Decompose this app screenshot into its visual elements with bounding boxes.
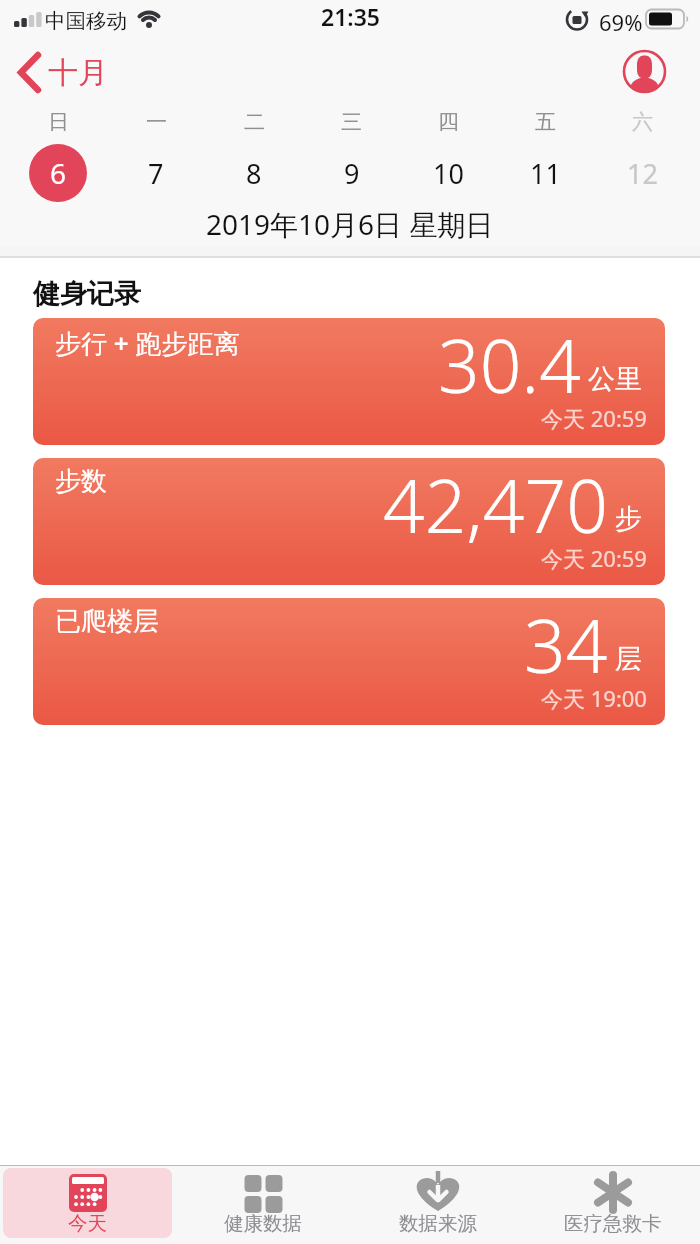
staticText: 30.4 [438, 318, 581, 414]
staticText: 6 [50, 154, 67, 192]
staticText: 步数 [55, 465, 107, 498]
staticText: 健身记录 [33, 277, 141, 311]
button[interactable]: 8 [205, 144, 303, 202]
staticText: 六 [632, 109, 653, 135]
staticText: 34 [524, 598, 608, 694]
button[interactable]: 12 [594, 144, 691, 202]
staticText: 7 [148, 155, 164, 192]
staticText: 8 [246, 155, 262, 192]
button[interactable]: 9 [303, 144, 400, 202]
staticText: 五 [535, 109, 556, 135]
staticText: 十月 [48, 54, 108, 92]
button[interactable]: 步数 [33, 458, 665, 585]
staticText: 中国移动 [45, 8, 127, 34]
staticText: 步行 + 跑步距离 [55, 325, 240, 361]
staticText: 今天 19:00 [541, 683, 647, 713]
button[interactable]: 医疗急救卡 [525, 1166, 700, 1244]
staticText: 今天 [68, 1211, 107, 1236]
staticText: 今天 20:59 [541, 543, 647, 573]
staticText: 11 [530, 155, 561, 192]
button[interactable]: 10 [400, 144, 497, 202]
button[interactable]: 今天 [0, 1166, 175, 1244]
button[interactable]: 11 [497, 144, 594, 202]
staticText: 层 [615, 642, 642, 676]
button[interactable]: 7 [107, 144, 205, 202]
staticText: 9 [344, 155, 360, 192]
staticText: 今天 20:59 [541, 403, 647, 433]
button[interactable]: 健康数据 [175, 1166, 350, 1244]
staticText: 医疗急救卡 [564, 1211, 662, 1236]
staticText: 二 [244, 109, 265, 135]
staticText: 已爬楼层 [55, 605, 159, 638]
staticText: 三 [341, 109, 362, 135]
button[interactable]: 步行 + 跑步距离 [33, 318, 665, 445]
staticText: 公里 [588, 362, 642, 396]
button[interactable]: 6 [9, 144, 107, 202]
staticText: 10 [433, 155, 464, 192]
staticText: 2019年10月6日 星期日 [206, 205, 494, 243]
button[interactable] [622, 49, 667, 94]
staticText: 数据来源 [399, 1211, 477, 1236]
button[interactable]: 已爬楼层 [33, 598, 665, 725]
staticText: 42,470 [383, 458, 608, 554]
staticText: 12 [627, 155, 658, 192]
button[interactable]: 十月 [10, 50, 120, 96]
staticText: 69% [599, 7, 643, 37]
staticText: 四 [438, 109, 459, 135]
button[interactable]: 数据来源 [350, 1166, 525, 1244]
staticText: 步 [615, 502, 642, 536]
staticText: 健康数据 [224, 1211, 302, 1236]
staticText: 21:35 [321, 1, 380, 32]
staticText: 一 [146, 109, 167, 135]
staticText: 日 [48, 109, 69, 135]
